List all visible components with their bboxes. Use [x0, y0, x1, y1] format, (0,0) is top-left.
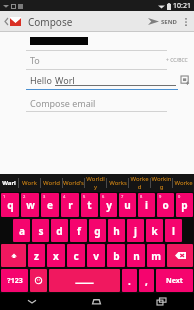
button[interactable]: Hello [0, 70, 194, 89]
button[interactable]: 7 [119, 193, 136, 217]
button[interactable]: f [70, 219, 87, 242]
button[interactable]: More options [180, 11, 191, 32]
staticText: y [106, 198, 112, 212]
staticText: 0 [178, 194, 181, 199]
staticText: p [181, 198, 188, 212]
staticText: Hello [30, 74, 55, 86]
staticText: Worl [55, 74, 75, 86]
staticText: z [34, 249, 39, 263]
staticText: Worke [174, 179, 193, 187]
button[interactable]: Home [64, 293, 129, 310]
staticText: Next [166, 276, 183, 286]
staticText: i [145, 198, 148, 212]
button[interactable]: v [87, 244, 105, 267]
staticText: 10:21 [173, 1, 191, 11]
button[interactable]: Delete [167, 244, 193, 267]
button[interactable]: s [32, 219, 49, 242]
button[interactable]: d [51, 219, 68, 242]
staticText: World [43, 179, 60, 187]
staticText: Work [22, 179, 37, 187]
button[interactable]: h [108, 219, 125, 242]
staticText: 8 [140, 194, 143, 199]
button[interactable]: 5 [81, 193, 98, 217]
button[interactable]: Worked [129, 174, 150, 192]
button[interactable]: Work [19, 174, 40, 192]
staticText: 6 [102, 194, 105, 199]
button[interactable]: Worke [173, 174, 194, 192]
button[interactable]: z [28, 244, 45, 267]
button[interactable]: Compose email [0, 94, 194, 111]
button[interactable]: k [146, 219, 163, 242]
staticText: 4 [63, 194, 66, 199]
staticText: 5 [83, 194, 86, 199]
button[interactable]: ?123 [1, 269, 28, 292]
button[interactable]: 1 [1, 193, 19, 217]
staticText: 3 [43, 194, 46, 199]
button[interactable]: a [13, 219, 30, 242]
staticText: 9 [159, 194, 162, 199]
staticText: q [7, 198, 14, 212]
button[interactable]: Shift [1, 244, 26, 267]
button[interactable]: 3 [41, 193, 59, 217]
staticText: Works [109, 179, 127, 187]
staticText: e [47, 198, 53, 212]
button[interactable]: Hide keyboard [0, 293, 64, 310]
button[interactable]: g [89, 219, 106, 242]
button[interactable]: 4 [61, 193, 79, 217]
button[interactable]: Attach image [176, 71, 194, 89]
staticText: 7 [121, 194, 124, 199]
staticText: ?123 [7, 276, 23, 286]
staticText: n [133, 249, 140, 263]
button[interactable]: SEND [145, 14, 180, 29]
button[interactable]: 6 [100, 193, 117, 217]
button[interactable]: To [0, 51, 194, 69]
button[interactable]: , [139, 269, 154, 292]
button[interactable]: Recent apps [129, 293, 194, 310]
button[interactable]: j [127, 219, 144, 242]
button[interactable]: 9 [157, 193, 174, 217]
button[interactable]: Next [156, 269, 193, 292]
staticText: h [113, 224, 120, 238]
staticText: d [56, 224, 63, 238]
button[interactable]: 8 [138, 193, 155, 217]
staticText: s [38, 224, 44, 238]
staticText: Worked [129, 175, 150, 191]
button[interactable]: Emoji [30, 269, 47, 292]
button[interactable]: n [127, 244, 145, 267]
button[interactable]: Warl [0, 174, 18, 192]
staticText: Working [151, 175, 172, 191]
staticText: g [94, 224, 101, 238]
staticText: j [134, 224, 137, 238]
button[interactable]: World [41, 174, 62, 192]
staticText: k [151, 224, 158, 238]
staticText: SEND [161, 18, 177, 26]
staticText: b [113, 249, 120, 263]
staticText: u [124, 198, 131, 212]
button[interactable]: b [107, 244, 125, 267]
button[interactable]: Worldly [85, 174, 106, 192]
button[interactable]: l [165, 219, 182, 242]
button[interactable]: c [67, 244, 85, 267]
staticText: , [145, 274, 148, 288]
staticText: x [53, 249, 59, 263]
staticText: 2 [23, 194, 26, 199]
button[interactable]: 2 [21, 193, 39, 217]
staticText: v [93, 249, 99, 263]
staticText: a [19, 224, 25, 238]
button[interactable]: Space [49, 269, 120, 292]
button[interactable]: m [147, 244, 165, 267]
staticText: . [128, 274, 131, 288]
button[interactable]: Navigate up [3, 17, 23, 26]
staticText: Compose [28, 15, 73, 29]
staticText: w [26, 198, 35, 212]
button[interactable]: Works [107, 174, 128, 192]
button[interactable]: 0 [176, 193, 193, 217]
button[interactable]: Working [151, 174, 172, 192]
button[interactable]: + CC/BCC [166, 57, 188, 64]
staticText: m [151, 249, 161, 263]
button[interactable]: x [47, 244, 65, 267]
button[interactable]: . [122, 269, 137, 292]
button[interactable]: World's [63, 174, 84, 192]
staticText: 1 [3, 194, 6, 199]
staticText: o [162, 198, 169, 212]
